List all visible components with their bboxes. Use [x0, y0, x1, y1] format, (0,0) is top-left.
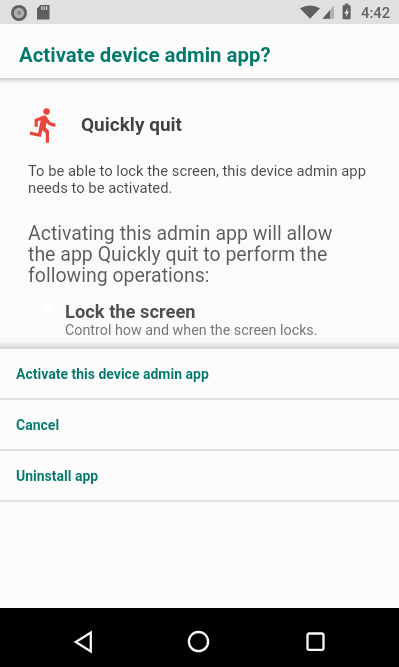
staticText: Activate device admin app? — [19, 43, 271, 67]
staticText: Control how and when the screen locks. — [65, 322, 318, 339]
button[interactable]: Activate this device admin app — [0, 350, 399, 398]
staticText: Quickly quit — [81, 113, 183, 135]
staticText: 4:42 — [361, 4, 391, 21]
staticText: Lock the screen — [65, 301, 196, 322]
staticText: Activating this admin app will allow the… — [28, 222, 333, 286]
button[interactable] — [169, 608, 229, 667]
staticText: Cancel — [16, 417, 60, 433]
button[interactable]: Cancel — [0, 400, 399, 449]
staticText: To be able to lock the screen, this devi… — [28, 162, 366, 196]
button[interactable]: Uninstall app — [0, 451, 399, 500]
staticText: Uninstall app — [16, 468, 99, 484]
button[interactable] — [53, 608, 113, 667]
staticText: Activate this device admin app — [16, 366, 209, 382]
button[interactable] — [286, 608, 346, 667]
